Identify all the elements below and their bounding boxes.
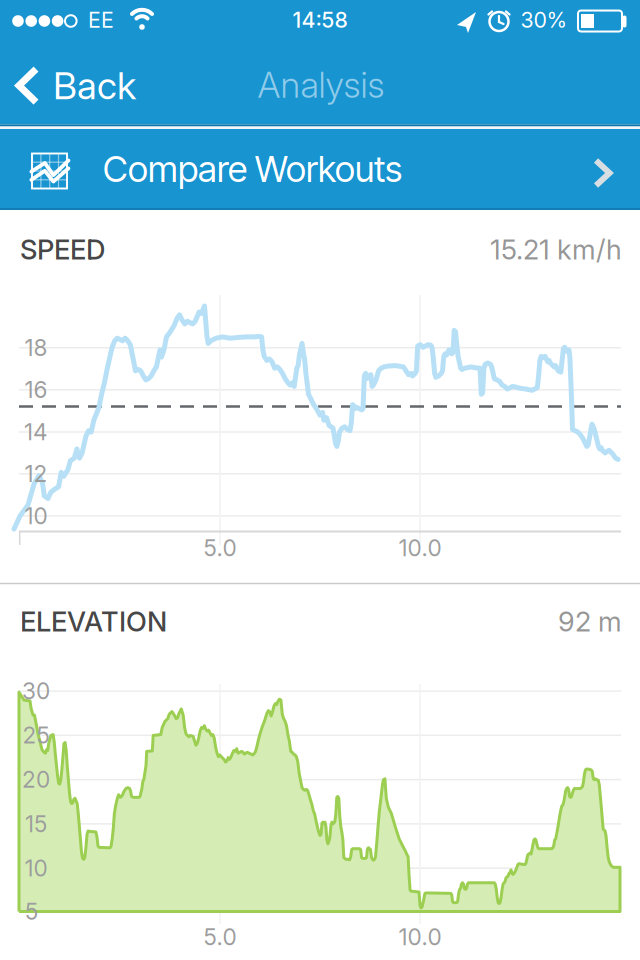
staticText: ELEVATION (20, 605, 167, 638)
staticText: 14:58 (292, 7, 347, 33)
staticText: 92 m (558, 605, 622, 638)
staticText: 15.21 km/h (490, 233, 622, 266)
staticText: 10 (24, 502, 47, 530)
staticText: 12 (24, 460, 47, 487)
button[interactable]: Compare Workouts (0, 129, 640, 210)
staticText: 10.0 (398, 923, 441, 951)
staticText: 15 (25, 810, 47, 838)
staticText: EE (88, 7, 114, 33)
staticText: 5.0 (203, 923, 236, 951)
staticText: 10 (24, 854, 47, 882)
button[interactable]: Back (16, 63, 136, 108)
staticText: Compare Workouts (103, 147, 402, 191)
staticText: 5.0 (203, 534, 236, 562)
staticText: 18 (24, 334, 47, 361)
staticText: 14 (24, 418, 48, 446)
staticText: 25 (22, 722, 49, 749)
staticText: 30% (520, 7, 567, 33)
staticText: 16 (24, 376, 47, 403)
staticText: 20 (22, 766, 50, 793)
staticText: Analysis (257, 64, 384, 106)
staticText: SPEED (20, 233, 105, 266)
staticText: 5 (25, 898, 38, 925)
staticText: 30 (22, 677, 50, 705)
staticText: Back (53, 63, 136, 108)
staticText: 10.0 (398, 534, 441, 562)
